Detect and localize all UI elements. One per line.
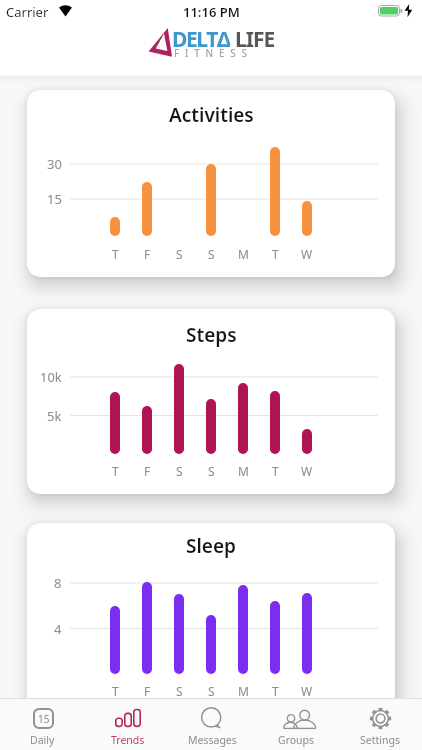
- staticText: T: [112, 463, 119, 479]
- staticText: 10k: [40, 368, 62, 386]
- staticText: M: [238, 246, 249, 262]
- button[interactable]: Settings: [338, 698, 422, 750]
- staticText: S: [176, 683, 183, 699]
- staticText: 11:16 PM: [183, 3, 240, 19]
- staticText: S: [176, 463, 183, 479]
- staticText: Daily: [30, 733, 55, 747]
- staticText: M: [238, 463, 249, 479]
- staticText: Messages: [188, 733, 237, 747]
- button[interactable]: Trends: [85, 698, 170, 750]
- staticText: F: [144, 463, 151, 479]
- staticText: 15: [47, 190, 62, 208]
- staticText: T: [272, 463, 279, 479]
- staticText: Trends: [111, 733, 145, 747]
- staticText: 15: [38, 712, 50, 726]
- staticText: Groups: [278, 733, 315, 747]
- staticText: Settings: [360, 733, 400, 747]
- button[interactable]: Groups: [254, 698, 338, 750]
- staticText: T: [112, 246, 119, 262]
- staticText: Sleep: [186, 533, 236, 559]
- staticText: DELTΔ: [172, 25, 230, 47]
- staticText: T: [112, 683, 119, 699]
- staticText: 5k: [47, 407, 62, 425]
- staticText: S: [208, 463, 215, 479]
- staticText: T: [272, 683, 279, 699]
- staticText: Activities: [169, 102, 254, 128]
- staticText: LIFE: [235, 25, 275, 47]
- staticText: Steps: [186, 322, 237, 348]
- staticText: S: [208, 683, 215, 699]
- staticText: F: [144, 683, 151, 699]
- staticText: M: [238, 683, 249, 699]
- staticText: T: [272, 246, 279, 262]
- staticText: Carrier: [6, 3, 49, 19]
- staticText: W: [301, 463, 313, 479]
- staticText: S: [176, 246, 183, 262]
- staticText: FITNESS: [174, 46, 253, 60]
- staticText: 8: [54, 574, 62, 592]
- staticText: W: [301, 683, 313, 699]
- staticText: S: [208, 246, 215, 262]
- staticText: 4: [54, 620, 62, 638]
- button[interactable]: Messages: [170, 698, 254, 750]
- staticText: W: [301, 246, 313, 262]
- button[interactable]: 15: [0, 698, 85, 750]
- staticText: 30: [47, 155, 62, 173]
- staticText: F: [144, 246, 151, 262]
